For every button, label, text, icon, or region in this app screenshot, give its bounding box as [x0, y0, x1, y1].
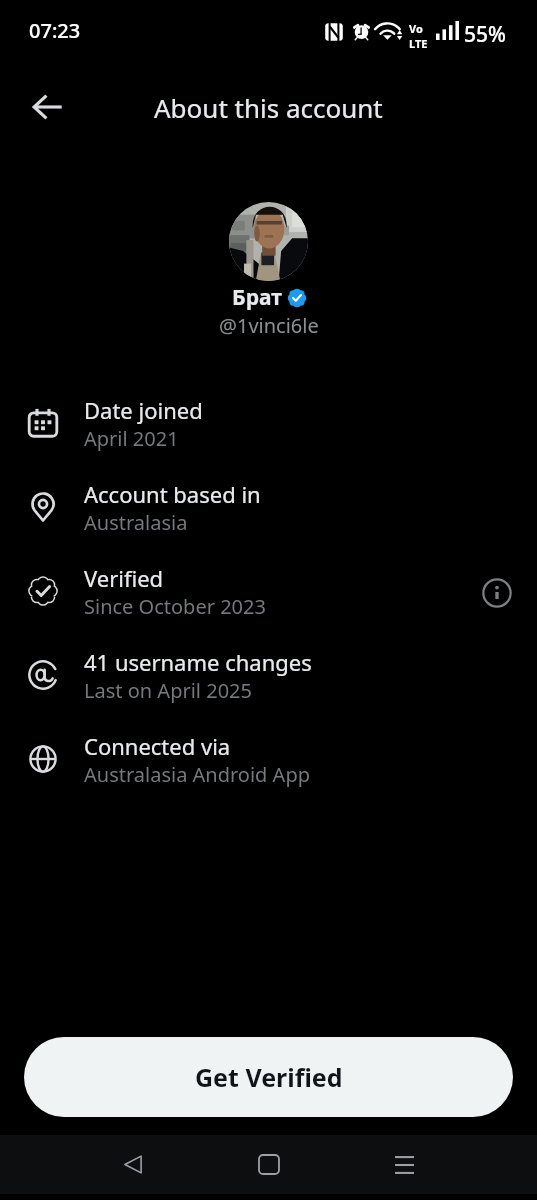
staticText: Australasia [84, 509, 188, 536]
staticText: @1vinci6le [219, 312, 319, 339]
button[interactable]: Get Verified [24, 1037, 513, 1117]
staticText: Get Verified [195, 1060, 343, 1094]
button[interactable]: Connected via [0, 719, 537, 803]
staticText: Last on April 2025 [84, 677, 252, 704]
button[interactable]: Home [241, 1135, 297, 1194]
staticText: Брат [232, 283, 282, 312]
staticText: Connected via [84, 731, 231, 761]
staticText: April 2021 [84, 425, 179, 452]
button[interactable]: Verified [0, 551, 537, 635]
button[interactable]: Back [105, 1135, 161, 1194]
staticText: 55% [464, 20, 506, 49]
button[interactable]: Back [22, 82, 72, 132]
staticText: Vo [409, 21, 423, 36]
button[interactable]: More information [475, 571, 519, 615]
button[interactable]: 41 username changes [0, 635, 537, 719]
button[interactable]: Profile photo [229, 202, 308, 281]
staticText: 41 username changes [84, 647, 312, 677]
staticText: 07:23 [29, 17, 81, 44]
button[interactable]: Recent apps [376, 1135, 432, 1194]
staticText: Date joined [84, 395, 203, 425]
staticText: About this account [154, 90, 383, 125]
staticText: Account based in [84, 479, 261, 509]
button[interactable]: Date joined [0, 383, 537, 467]
button[interactable]: Account based in [0, 467, 537, 551]
staticText: Since October 2023 [84, 593, 266, 620]
staticText: Australasia Android App [84, 761, 310, 788]
staticText: LTE [409, 36, 428, 51]
staticText: Verified [84, 563, 164, 593]
